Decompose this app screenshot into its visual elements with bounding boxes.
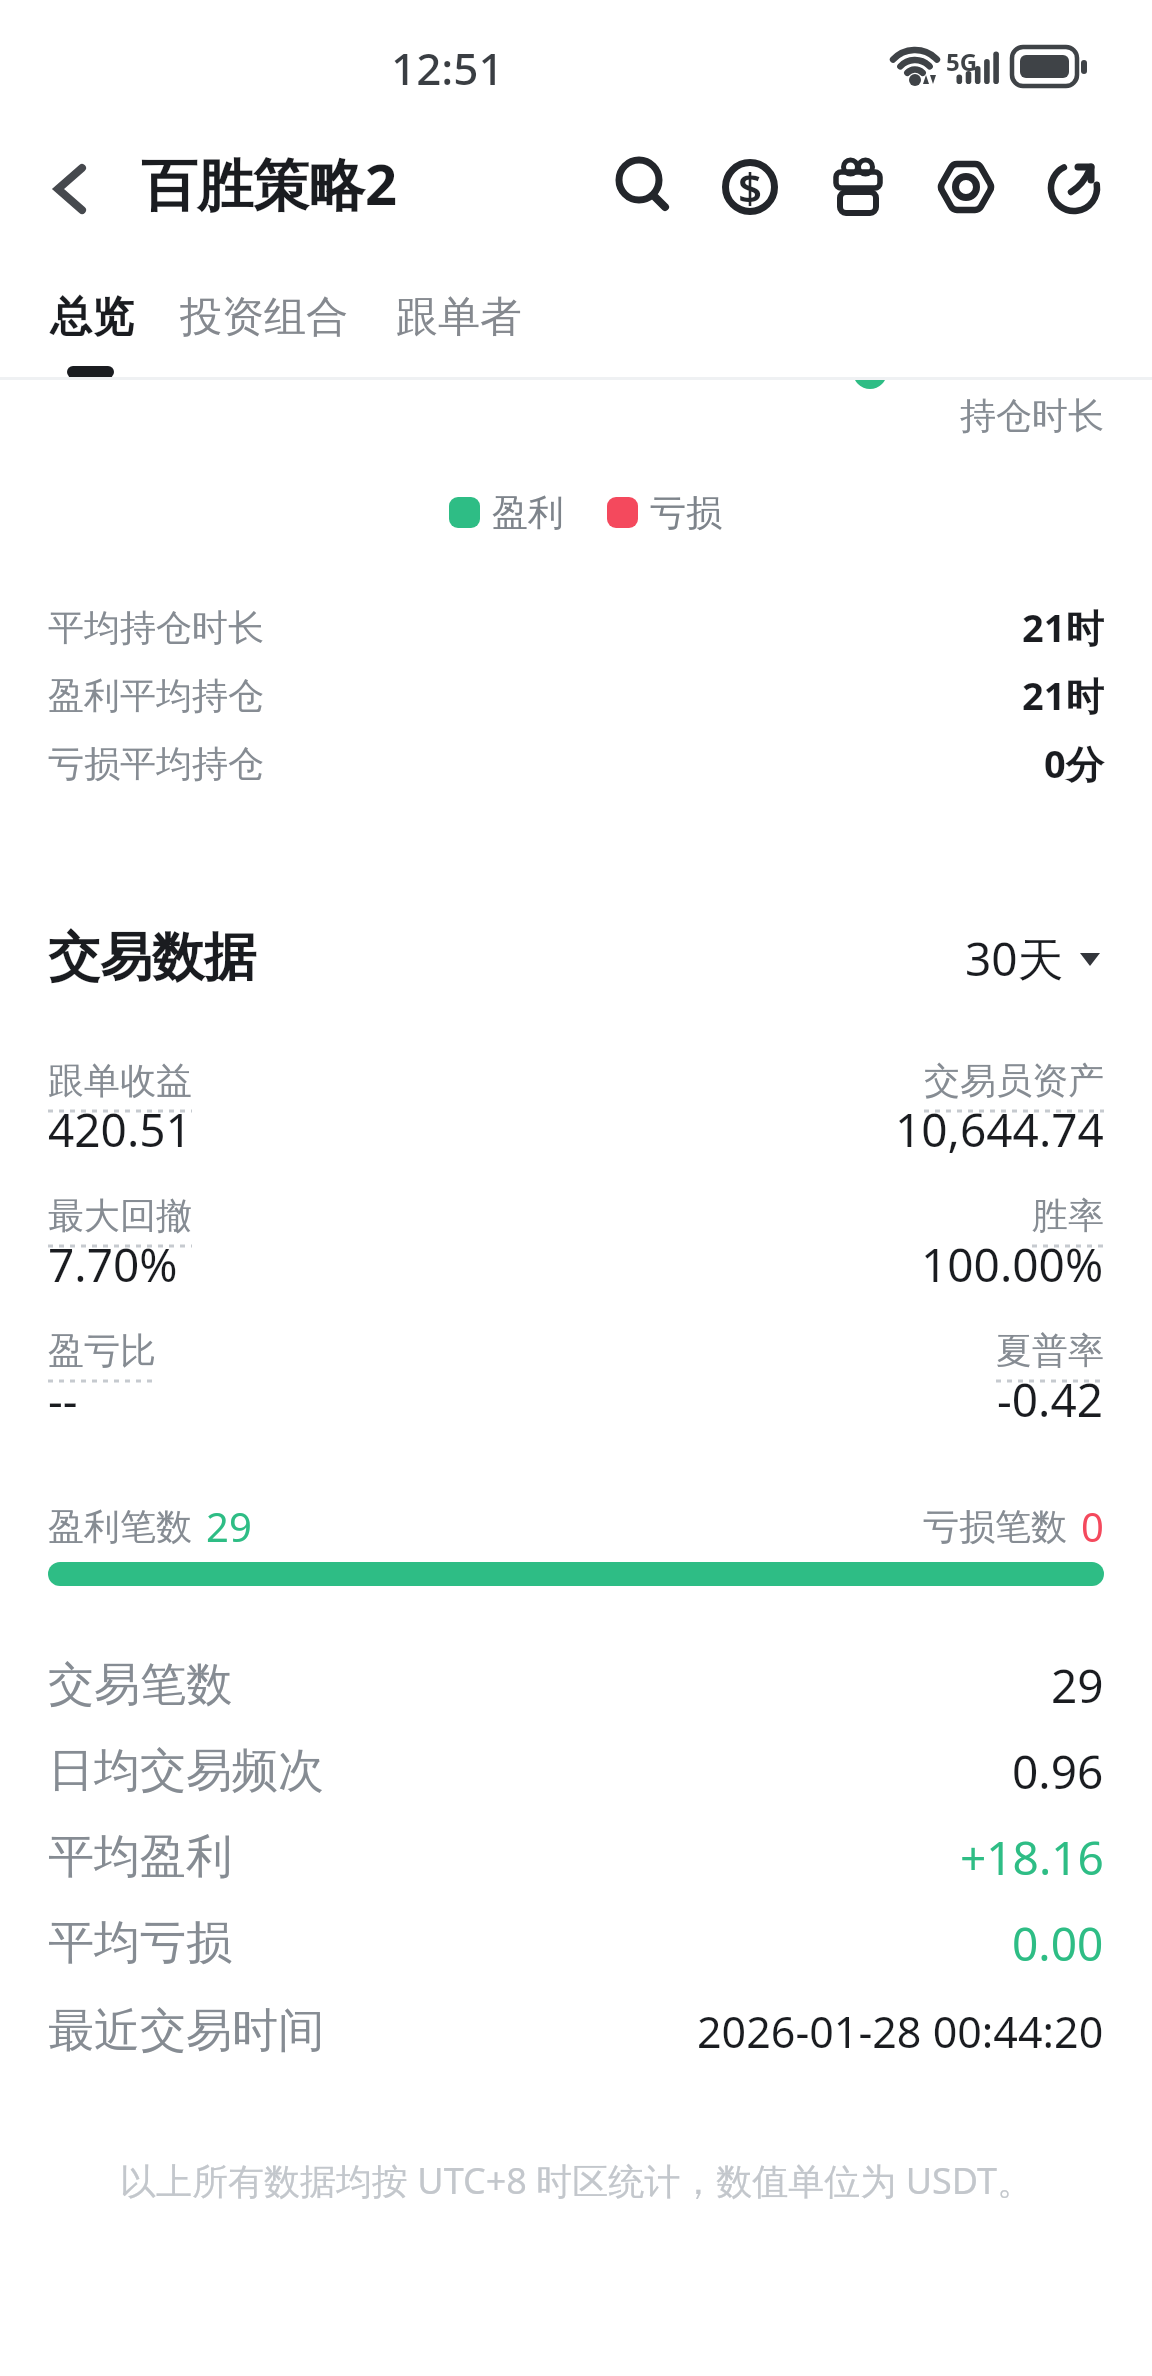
button[interactable] xyxy=(930,152,1002,224)
staticText: 投资组合 xyxy=(180,291,348,344)
staticText: 7.70% xyxy=(48,1233,178,1296)
staticText: 亏损 xyxy=(650,490,722,535)
staticText: 420.51 xyxy=(48,1098,192,1161)
staticText: 100.00% xyxy=(921,1233,1104,1296)
staticText: -- xyxy=(48,1368,78,1431)
staticText: 以上所有数据均按 UTC+8 时区统计，数值单位为 USDT。 xyxy=(120,2156,1033,2205)
staticText: 0 xyxy=(1081,1499,1104,1553)
button[interactable] xyxy=(607,152,679,224)
button[interactable]: $ xyxy=(714,152,786,224)
staticText: 盈利 xyxy=(492,490,564,535)
staticText: 21时 xyxy=(1022,601,1104,653)
button[interactable] xyxy=(822,152,894,224)
staticText: 百胜策略2 xyxy=(141,145,398,221)
staticText: 0.96 xyxy=(1012,1740,1104,1803)
button[interactable]: 30天 xyxy=(965,927,1100,990)
staticText: 0分 xyxy=(1044,737,1104,789)
staticText: 胜率 xyxy=(1032,1193,1104,1238)
staticText: 最大回撤 xyxy=(48,1193,192,1238)
staticText: 平均亏损 xyxy=(48,1914,232,1972)
staticText: 盈亏比 xyxy=(48,1328,156,1373)
staticText: 10,644.74 xyxy=(895,1098,1104,1161)
staticText: -0.42 xyxy=(997,1368,1104,1431)
staticText: 29 xyxy=(206,1499,252,1553)
staticText: 亏损笔数 xyxy=(923,1504,1067,1549)
staticText: 2026-01-28 00:44:20 xyxy=(697,2002,1104,2061)
staticText: 交易数据 xyxy=(48,925,256,991)
staticText: 盈利笔数 xyxy=(48,1504,192,1549)
staticText: 亏损平均持仓 xyxy=(48,741,264,786)
button[interactable]: 跟单者 xyxy=(396,291,522,344)
staticText: 29 xyxy=(1051,1654,1104,1717)
staticText: 交易员资产 xyxy=(924,1058,1104,1103)
button[interactable]: 总览 xyxy=(50,291,134,344)
staticText: 30天 xyxy=(965,927,1064,990)
staticText: 跟单者 xyxy=(396,291,522,344)
staticText: 最近交易时间 xyxy=(48,2002,324,2060)
staticText: 21时 xyxy=(1022,669,1104,721)
staticText: 平均持仓时长 xyxy=(48,605,264,650)
staticText: 跟单收益 xyxy=(48,1058,192,1103)
button[interactable]: 投资组合 xyxy=(180,291,348,344)
button[interactable] xyxy=(1038,152,1110,224)
staticText: 平均盈利 xyxy=(48,1828,232,1886)
button[interactable] xyxy=(40,158,100,218)
staticText: 5G xyxy=(946,45,978,78)
staticText: 12:51 xyxy=(391,38,504,94)
staticText: 夏普率 xyxy=(996,1328,1104,1373)
staticText: 盈利平均持仓 xyxy=(48,673,264,718)
staticText: 持仓时长 xyxy=(960,393,1104,438)
staticText: +18.16 xyxy=(960,1826,1104,1889)
staticText: 交易笔数 xyxy=(48,1656,232,1714)
staticText: 0.00 xyxy=(1012,1912,1104,1975)
staticText: 总览 xyxy=(50,291,134,344)
staticText: $ xyxy=(738,159,763,216)
staticText: 日均交易频次 xyxy=(48,1742,324,1800)
